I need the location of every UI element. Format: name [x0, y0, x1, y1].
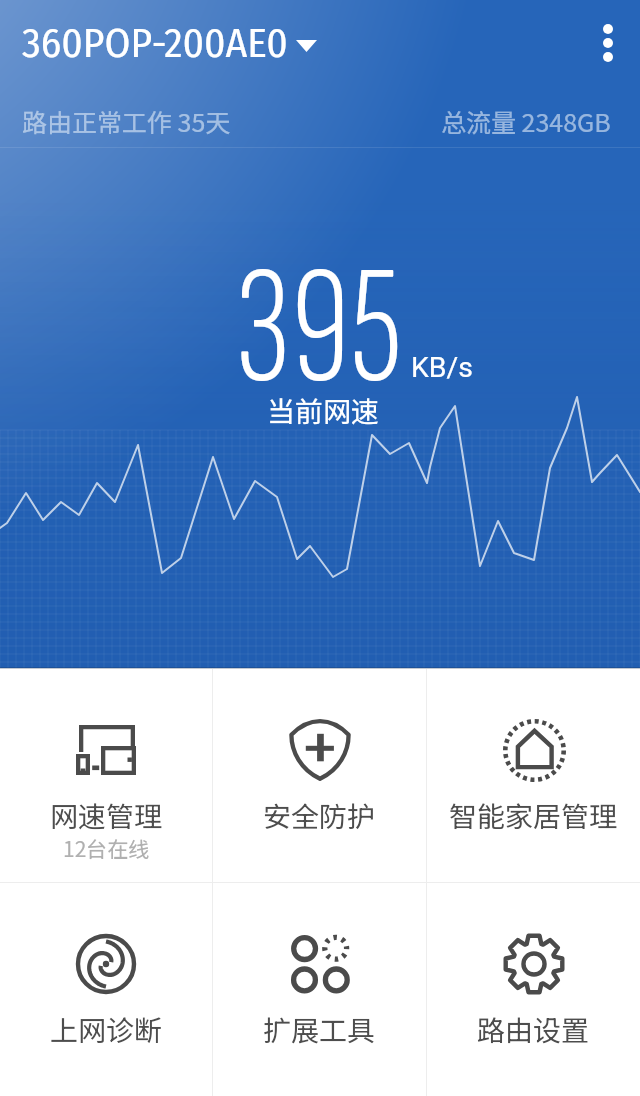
staticText: KB/s — [411, 351, 473, 384]
staticText: 360POP-200AE0 — [22, 18, 288, 68]
staticText: 395 — [235, 230, 402, 430]
staticText: 12台在线 — [63, 833, 150, 863]
staticText: 路由正常工作 35天 — [22, 103, 231, 139]
button[interactable]: 智能家居管理 — [427, 669, 640, 882]
staticText: 扩展工具 — [263, 1009, 376, 1050]
button[interactable]: 360POP-200AE0 — [22, 18, 318, 68]
button[interactable]: 扩展工具 — [213, 883, 426, 1096]
staticText: 总流量 2348GB — [441, 103, 611, 139]
button[interactable]: More options — [576, 0, 640, 86]
button[interactable]: 路由设置 — [427, 883, 640, 1096]
button[interactable]: 网速管理 — [0, 669, 212, 882]
button[interactable]: 上网诊断 — [0, 883, 212, 1096]
staticText: 当前网速 — [267, 390, 380, 431]
staticText: 上网诊断 — [50, 1009, 163, 1050]
button[interactable]: 安全防护 — [213, 669, 426, 882]
staticText: 安全防护 — [263, 795, 376, 836]
staticText: 路由设置 — [477, 1009, 590, 1050]
staticText: 智能家居管理 — [449, 795, 618, 836]
staticText: 网速管理 — [50, 795, 163, 836]
